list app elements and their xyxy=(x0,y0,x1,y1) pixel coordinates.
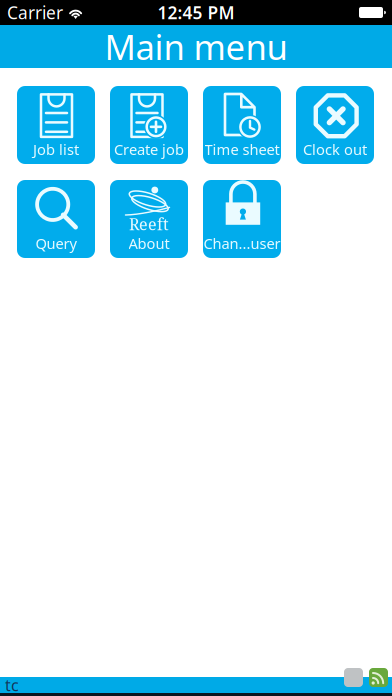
staticText: Query xyxy=(35,233,76,253)
staticText: Carrier xyxy=(7,1,63,24)
staticText: Main menu xyxy=(104,23,287,69)
button[interactable]: Create job xyxy=(110,86,188,164)
staticText: Chan...user xyxy=(203,233,280,253)
button[interactable]: Clock out xyxy=(296,86,374,164)
button[interactable]: Reeft xyxy=(110,180,188,258)
staticText: Reeft xyxy=(129,213,169,235)
button[interactable]: Query xyxy=(17,180,95,258)
staticText: Job list xyxy=(33,139,79,159)
staticText: tc xyxy=(5,674,19,696)
staticText: About xyxy=(128,233,169,253)
staticText: Clock out xyxy=(303,139,367,159)
button[interactable]: Chan...user xyxy=(203,180,281,258)
button[interactable]: Time sheet xyxy=(203,86,281,164)
button[interactable]: Job list xyxy=(17,86,95,164)
button[interactable]: Barcode scanner xyxy=(344,668,363,687)
staticText: 12:45 PM xyxy=(157,1,234,24)
button[interactable]: Broadcast xyxy=(369,668,388,687)
staticText: Create job xyxy=(114,139,184,159)
staticText: Time sheet xyxy=(204,139,279,159)
